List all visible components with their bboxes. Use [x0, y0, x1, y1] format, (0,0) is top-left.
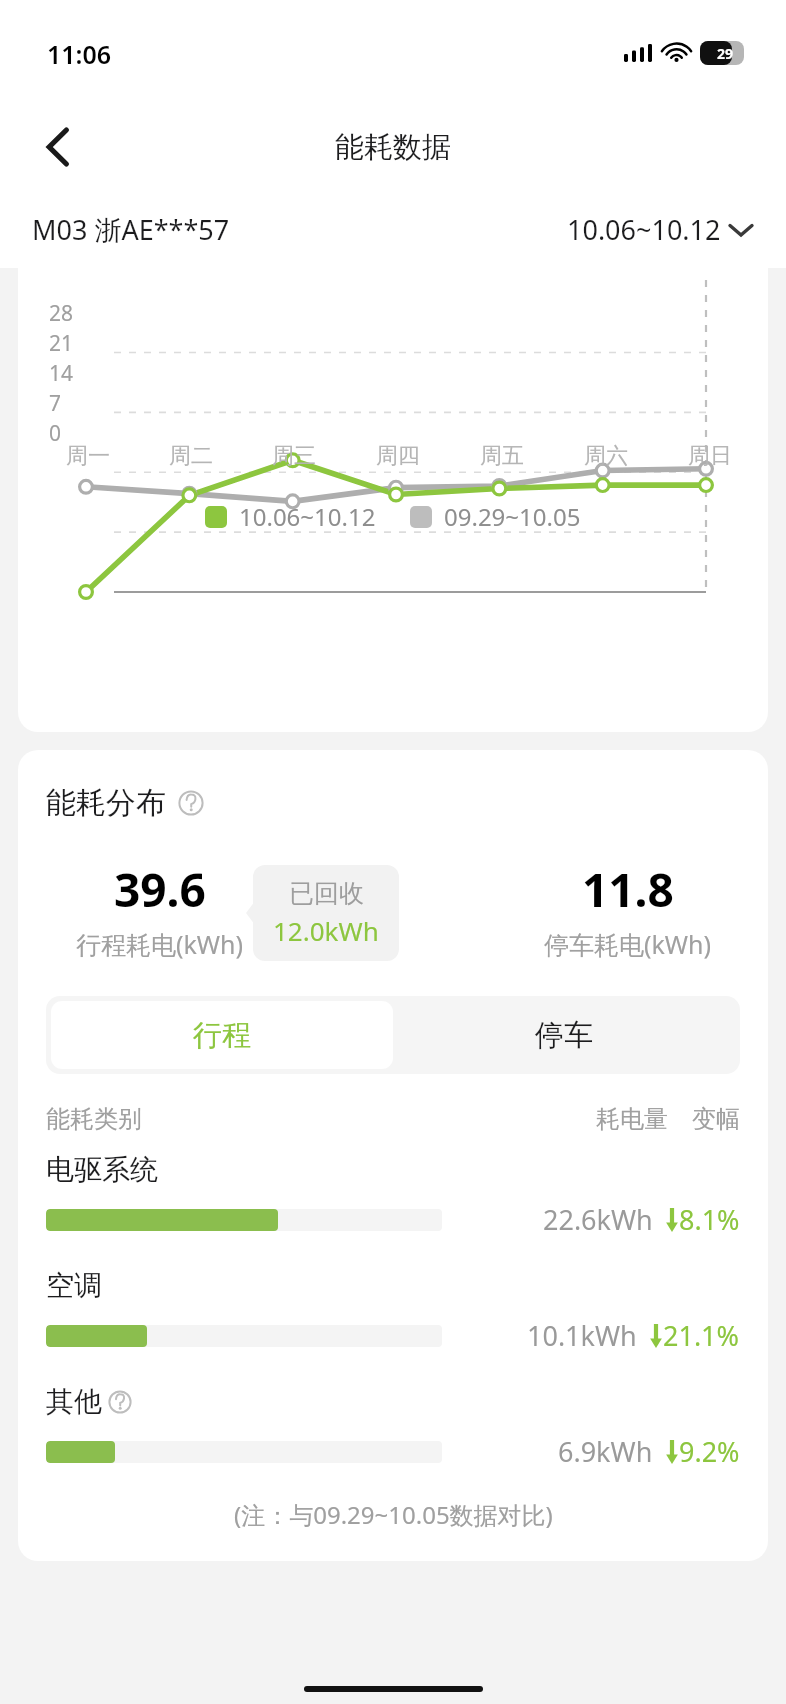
staticText: 11:06 — [47, 37, 112, 71]
staticText: 周六 — [584, 442, 628, 470]
staticText: (注：与09.29~10.05数据对比) — [234, 1498, 553, 1531]
staticText: 行程耗电(kWh) — [76, 927, 244, 961]
staticText: 停车耗电(kWh) — [544, 927, 712, 961]
staticText: 39.6 — [114, 858, 206, 921]
staticText: 周一 — [66, 442, 110, 470]
staticText: 8.1% — [679, 1201, 740, 1238]
staticText: 10.06~10.12 — [239, 500, 376, 533]
staticText: 能耗数据 — [335, 129, 451, 166]
staticText: 能耗类别 — [46, 1104, 142, 1134]
staticText: 21.1% — [663, 1317, 740, 1354]
staticText: 已回收 — [289, 878, 364, 909]
staticText: M03 浙AE***57 — [32, 211, 230, 248]
staticText: 9.2% — [679, 1433, 740, 1470]
staticText: 11.8 — [582, 858, 674, 921]
staticText: 14 — [48, 359, 73, 388]
staticText: 周四 — [376, 442, 420, 470]
staticText: 10.06~10.12 — [567, 211, 721, 248]
staticText: 22.6kWh — [543, 1201, 653, 1238]
staticText: 耗电量 — [596, 1104, 668, 1134]
button[interactable]: 停车 — [393, 1001, 735, 1069]
button[interactable]: 行程 — [51, 1001, 393, 1069]
staticText: 周三 — [272, 442, 316, 470]
staticText: 0 — [48, 419, 61, 448]
staticText: 变幅 — [692, 1104, 740, 1134]
staticText: 12.0kWh — [273, 913, 379, 948]
staticText: 能耗分布 — [46, 784, 166, 822]
button[interactable]: 帮助 — [178, 790, 204, 816]
staticText: 29 — [717, 44, 734, 63]
staticText: 6.9kWh — [558, 1433, 653, 1470]
staticText: 10.1kWh — [527, 1317, 637, 1354]
staticText: 09.29~10.05 — [444, 500, 581, 533]
button[interactable]: Back — [30, 119, 86, 175]
staticText: 停车 — [535, 1017, 593, 1054]
staticText: 7 — [48, 389, 61, 418]
staticText: 周日 — [688, 442, 732, 470]
staticText: 行程 — [193, 1017, 251, 1054]
staticText: 周五 — [480, 442, 524, 470]
staticText: 其他 — [46, 1384, 102, 1419]
staticText: 28 — [48, 299, 73, 328]
button[interactable]: 10.06~10.12 — [563, 207, 756, 252]
staticText: 21 — [48, 329, 73, 358]
staticText: 电驱系统 — [46, 1152, 158, 1187]
button[interactable]: 帮助 — [108, 1390, 132, 1414]
staticText: 周二 — [169, 442, 213, 470]
staticText: 空调 — [46, 1268, 102, 1303]
